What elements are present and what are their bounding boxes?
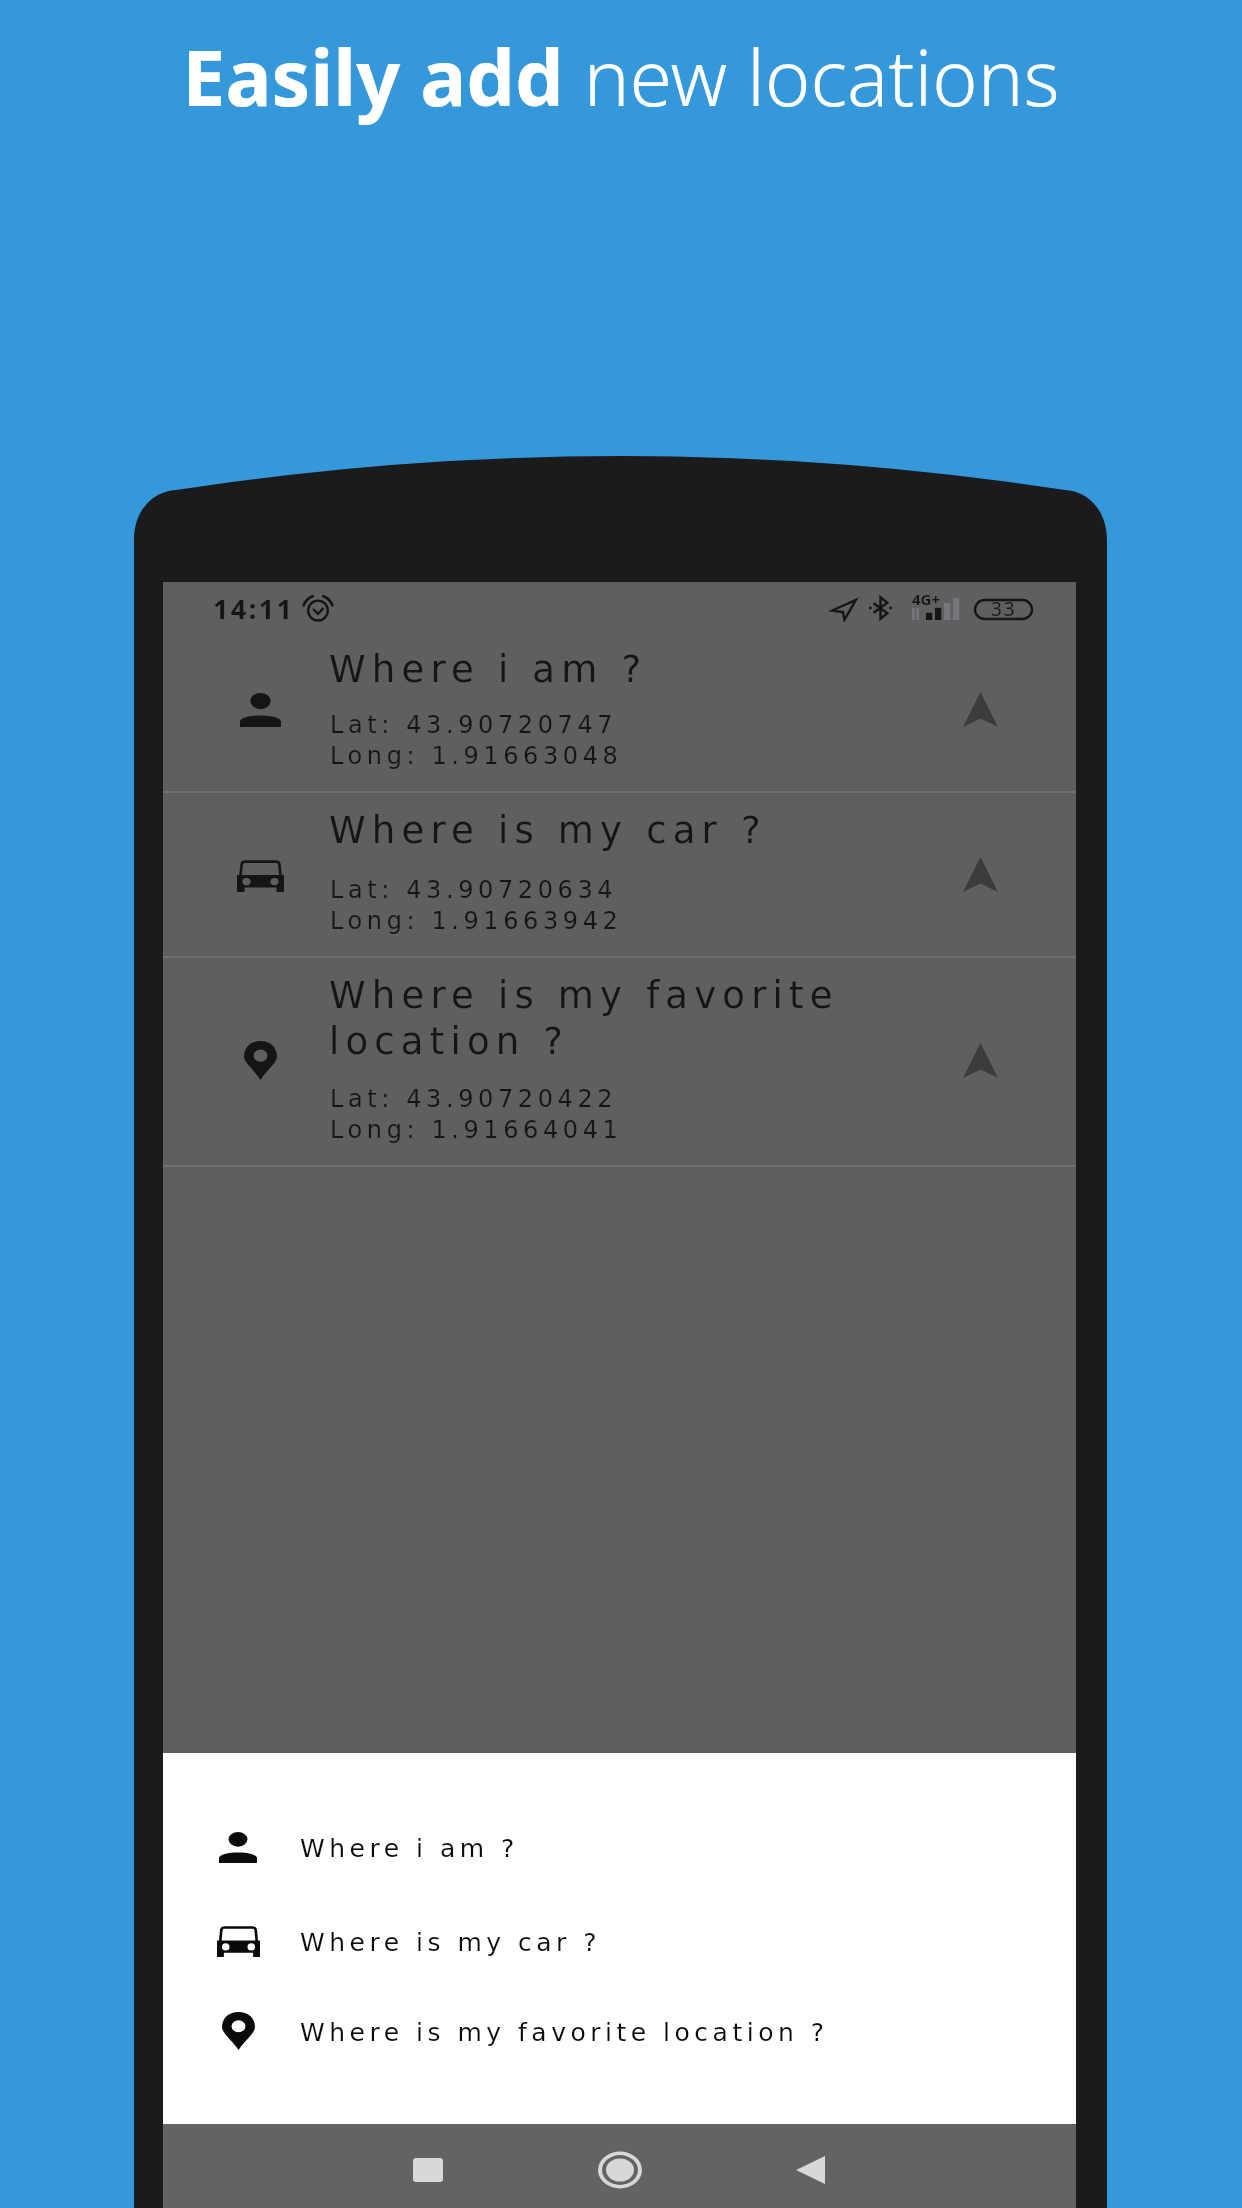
button[interactable]: Recent apps bbox=[398, 2144, 458, 2196]
staticText: Lat: 43.90720422 bbox=[330, 1085, 618, 1113]
staticText: Lat: 43.90720634 bbox=[330, 876, 618, 904]
staticText: Where is my car ? bbox=[329, 809, 874, 852]
staticText: 4G+ bbox=[912, 589, 941, 609]
staticText: Where is my favorite location ? bbox=[300, 2018, 829, 2047]
staticText: Where is my favorite location ? bbox=[329, 974, 874, 1063]
staticText: Where i am ? bbox=[329, 648, 874, 691]
staticText: 14:11 bbox=[213, 590, 295, 627]
staticText: Long: 1.91663048 bbox=[330, 742, 623, 770]
button[interactable]: Where i am ? bbox=[163, 1802, 1076, 1892]
staticText: Where i am ? bbox=[300, 1834, 519, 1863]
staticText: Where is my car ? bbox=[300, 1928, 602, 1957]
button[interactable]: Where is my car ? bbox=[163, 793, 1076, 956]
button[interactable]: Where i am ? bbox=[163, 632, 1076, 791]
staticText: Easily add new locations bbox=[182, 24, 1060, 129]
button[interactable]: Where is my favorite location ? bbox=[163, 958, 1076, 1165]
button[interactable]: Where is my favorite location ? bbox=[163, 1986, 1076, 2076]
button[interactable]: Home bbox=[590, 2144, 650, 2196]
staticText: Long: 1.91663942 bbox=[330, 907, 623, 935]
staticText: Lat: 43.90720747 bbox=[330, 711, 618, 739]
button[interactable]: Back bbox=[780, 2144, 840, 2196]
button[interactable]: Where is my car ? bbox=[163, 1896, 1076, 1986]
staticText: Long: 1.91664041 bbox=[330, 1116, 623, 1144]
staticText: 33 bbox=[991, 596, 1017, 622]
